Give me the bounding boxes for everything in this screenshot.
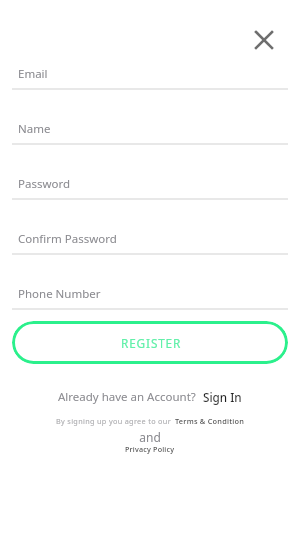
staticText: Email: [18, 66, 48, 82]
button[interactable]: [12, 227, 288, 254]
staticText: REGISTER: [121, 335, 182, 351]
staticText: Password: [18, 176, 71, 192]
button[interactable]: Close: [248, 24, 279, 55]
staticText: Privacy Policy: [125, 444, 175, 454]
staticText: and: [0, 429, 300, 445]
button[interactable]: Privacy Policy: [125, 444, 175, 454]
staticText: Already have an Account?: [58, 389, 196, 405]
button[interactable]: [12, 172, 288, 199]
staticText: Terms & Condition: [175, 416, 245, 426]
button[interactable]: REGISTER: [12, 321, 288, 364]
staticText: Phone Number: [18, 286, 101, 302]
staticText: By signing up you agree to our: [56, 416, 172, 426]
staticText: Confirm Password: [18, 231, 117, 247]
staticText: Name: [18, 121, 51, 137]
button[interactable]: [12, 62, 288, 89]
button[interactable]: Terms & Condition: [175, 416, 245, 426]
staticText: Sign In: [203, 389, 242, 405]
button[interactable]: [12, 117, 288, 144]
button[interactable]: Sign In: [203, 389, 242, 405]
button[interactable]: [12, 282, 288, 309]
